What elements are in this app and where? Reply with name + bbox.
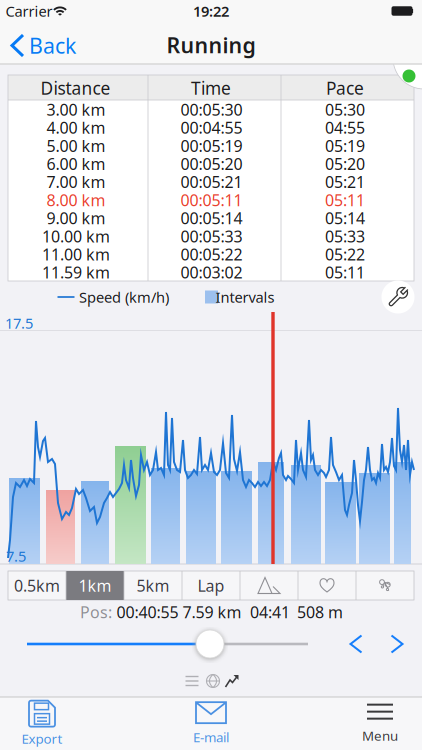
staticText: 05:14 — [325, 207, 365, 229]
button[interactable]: 1km — [66, 571, 123, 599]
staticText: 00:05:21 — [180, 171, 242, 192]
staticText: 1km — [78, 575, 111, 596]
button[interactable]: Position — [0, 622, 308, 666]
staticText: Back — [29, 31, 76, 60]
staticText: Speed (km/h) — [79, 287, 169, 307]
staticText: 00:05:20 — [180, 153, 242, 174]
staticText: Time — [191, 76, 231, 99]
staticText: Running — [166, 31, 255, 59]
staticText: 00:03:02 — [180, 262, 242, 283]
staticText: 19:22 — [193, 1, 229, 21]
staticText: 5km — [136, 575, 169, 596]
button[interactable]: Chart — [225, 674, 239, 688]
button[interactable]: Menu — [340, 699, 420, 749]
staticText: Distance — [40, 76, 110, 99]
staticText: 00:05:30 — [180, 99, 242, 120]
button[interactable]: Chart settings — [381, 280, 414, 313]
staticText: 00:05:14 — [180, 207, 242, 229]
staticText: 05:11 — [325, 262, 365, 283]
staticText: 05:33 — [325, 226, 365, 247]
staticText: Pace — [326, 76, 364, 99]
staticText: 04:55 — [325, 117, 365, 138]
staticText: 04:41 — [250, 601, 290, 623]
staticText: Lap — [197, 575, 224, 596]
staticText: 3.00 km — [46, 99, 105, 120]
button[interactable]: 0.5km — [8, 571, 65, 599]
staticText: 00:05:33 — [180, 226, 242, 247]
button[interactable]: Previous — [341, 629, 371, 659]
staticText: 05:21 — [325, 171, 365, 192]
staticText: 11.00 km — [42, 244, 110, 265]
staticText: 5.00 km — [46, 135, 105, 156]
staticText: 4.00 km — [46, 117, 105, 138]
staticText: Intervals — [215, 287, 274, 307]
staticText: 00:05:19 — [180, 135, 242, 156]
staticText: 05:30 — [325, 99, 365, 120]
button[interactable]: Export — [2, 699, 82, 749]
button[interactable]: List — [184, 674, 200, 688]
staticText: Pos: — [80, 601, 112, 623]
staticText: 00:05:22 — [180, 244, 242, 265]
staticText: Export — [21, 730, 62, 747]
staticText: 0.5km — [14, 575, 60, 596]
staticText: 10.00 km — [42, 226, 110, 247]
staticText: Menu — [362, 727, 398, 744]
staticText: 05:11 — [325, 189, 365, 211]
button[interactable]: Heart rate — [298, 571, 355, 599]
button[interactable]: Cadence — [356, 571, 413, 599]
staticText: 00:05:11 — [180, 189, 242, 211]
staticText: 7.5 — [6, 546, 26, 566]
staticText: 7.00 km — [46, 171, 105, 192]
staticText: 6.00 km — [46, 153, 105, 174]
button[interactable]: Next — [382, 629, 412, 659]
staticText: 508 m — [297, 601, 343, 623]
staticText: Carrier — [5, 1, 52, 21]
staticText: 7.59 km — [182, 601, 241, 623]
staticText: 05:20 — [325, 153, 365, 174]
button[interactable]: Elevation — [240, 571, 297, 599]
staticText: 00:04:55 — [180, 117, 242, 138]
staticText: E-mail — [193, 728, 229, 746]
staticText: 00:40:55 — [116, 601, 178, 623]
button[interactable]: Lap — [182, 571, 239, 599]
button[interactable]: E-mail — [171, 699, 251, 749]
staticText: 05:19 — [325, 135, 365, 156]
staticText: 17.5 — [5, 313, 33, 333]
button[interactable]: Back — [8, 27, 80, 63]
staticText: 05:22 — [325, 244, 365, 265]
staticText: 11.59 km — [42, 262, 110, 283]
staticText: 9.00 km — [46, 207, 105, 229]
staticText: 8.00 km — [46, 189, 105, 211]
button[interactable]: Map — [206, 674, 220, 688]
button[interactable]: 5km — [124, 571, 181, 599]
